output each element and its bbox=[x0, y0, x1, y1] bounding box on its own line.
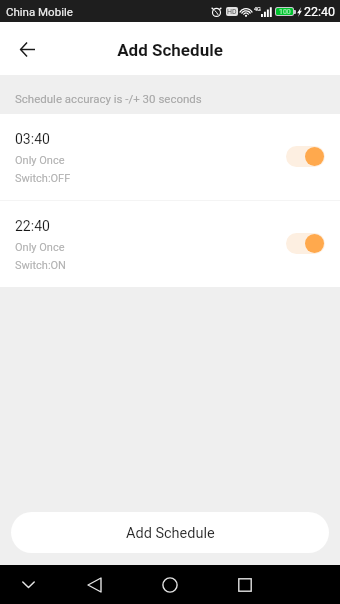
button[interactable]: Add Schedule bbox=[11, 512, 329, 553]
staticText: China Mobile bbox=[6, 5, 73, 18]
button[interactable]: Hide keyboard bbox=[8, 565, 48, 604]
staticText: 100 bbox=[279, 8, 291, 15]
button[interactable]: Recent apps bbox=[225, 565, 265, 604]
staticText: 4G bbox=[254, 6, 261, 12]
staticText: 22:40 bbox=[304, 4, 336, 19]
button[interactable]: 03:40 bbox=[0, 114, 340, 200]
button[interactable]: Back bbox=[3, 25, 51, 73]
staticText: HD bbox=[227, 8, 237, 16]
staticText: 03:40 bbox=[15, 131, 50, 147]
staticText: Only Once bbox=[15, 154, 65, 167]
button[interactable]: Home bbox=[150, 565, 190, 604]
staticText: Switch:ON bbox=[15, 259, 66, 272]
button[interactable]: Back bbox=[74, 565, 114, 604]
staticText: Only Once bbox=[15, 241, 65, 254]
staticText: Add Schedule bbox=[117, 40, 223, 60]
staticText: Switch:OFF bbox=[15, 172, 71, 185]
button[interactable]: Toggle schedule bbox=[286, 233, 325, 254]
button[interactable]: Toggle schedule bbox=[286, 146, 325, 167]
staticText: Add Schedule bbox=[126, 525, 215, 542]
staticText: 22:40 bbox=[15, 218, 50, 234]
staticText: Schedule accuracy is -/+ 30 seconds bbox=[15, 92, 202, 105]
button[interactable]: 22:40 bbox=[0, 201, 340, 287]
